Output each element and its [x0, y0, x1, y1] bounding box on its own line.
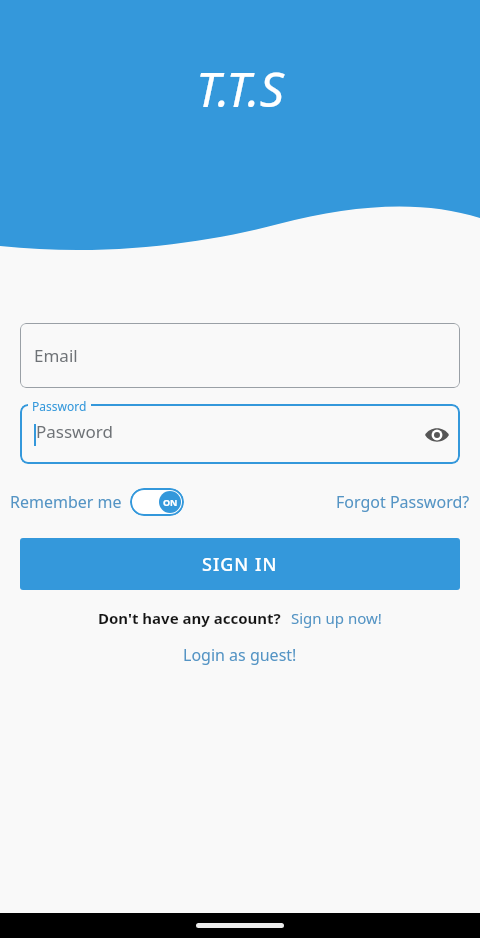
staticText: Don't have any account? [98, 608, 281, 628]
staticText: T.T.S [196, 56, 284, 121]
button[interactable] [20, 404, 460, 464]
staticText: Email [34, 344, 78, 367]
staticText: Sign up now! [291, 608, 382, 628]
staticText: Password [36, 420, 113, 443]
staticText: SIGN IN [202, 552, 278, 577]
staticText: Login as guest! [183, 644, 297, 666]
staticText: ON [163, 496, 178, 508]
button[interactable]: Sign up now! [291, 608, 382, 628]
staticText: Forgot Password? [336, 491, 470, 513]
button[interactable]: Forgot Password? [336, 491, 470, 513]
button[interactable]: Remember me [10, 488, 184, 516]
staticText: Password [32, 398, 87, 414]
button[interactable]: Show password [420, 418, 454, 452]
button[interactable]: Login as guest! [183, 644, 297, 666]
button[interactable]: Email [20, 323, 460, 388]
button[interactable]: SIGN IN [20, 538, 460, 590]
staticText: Remember me [10, 491, 122, 513]
